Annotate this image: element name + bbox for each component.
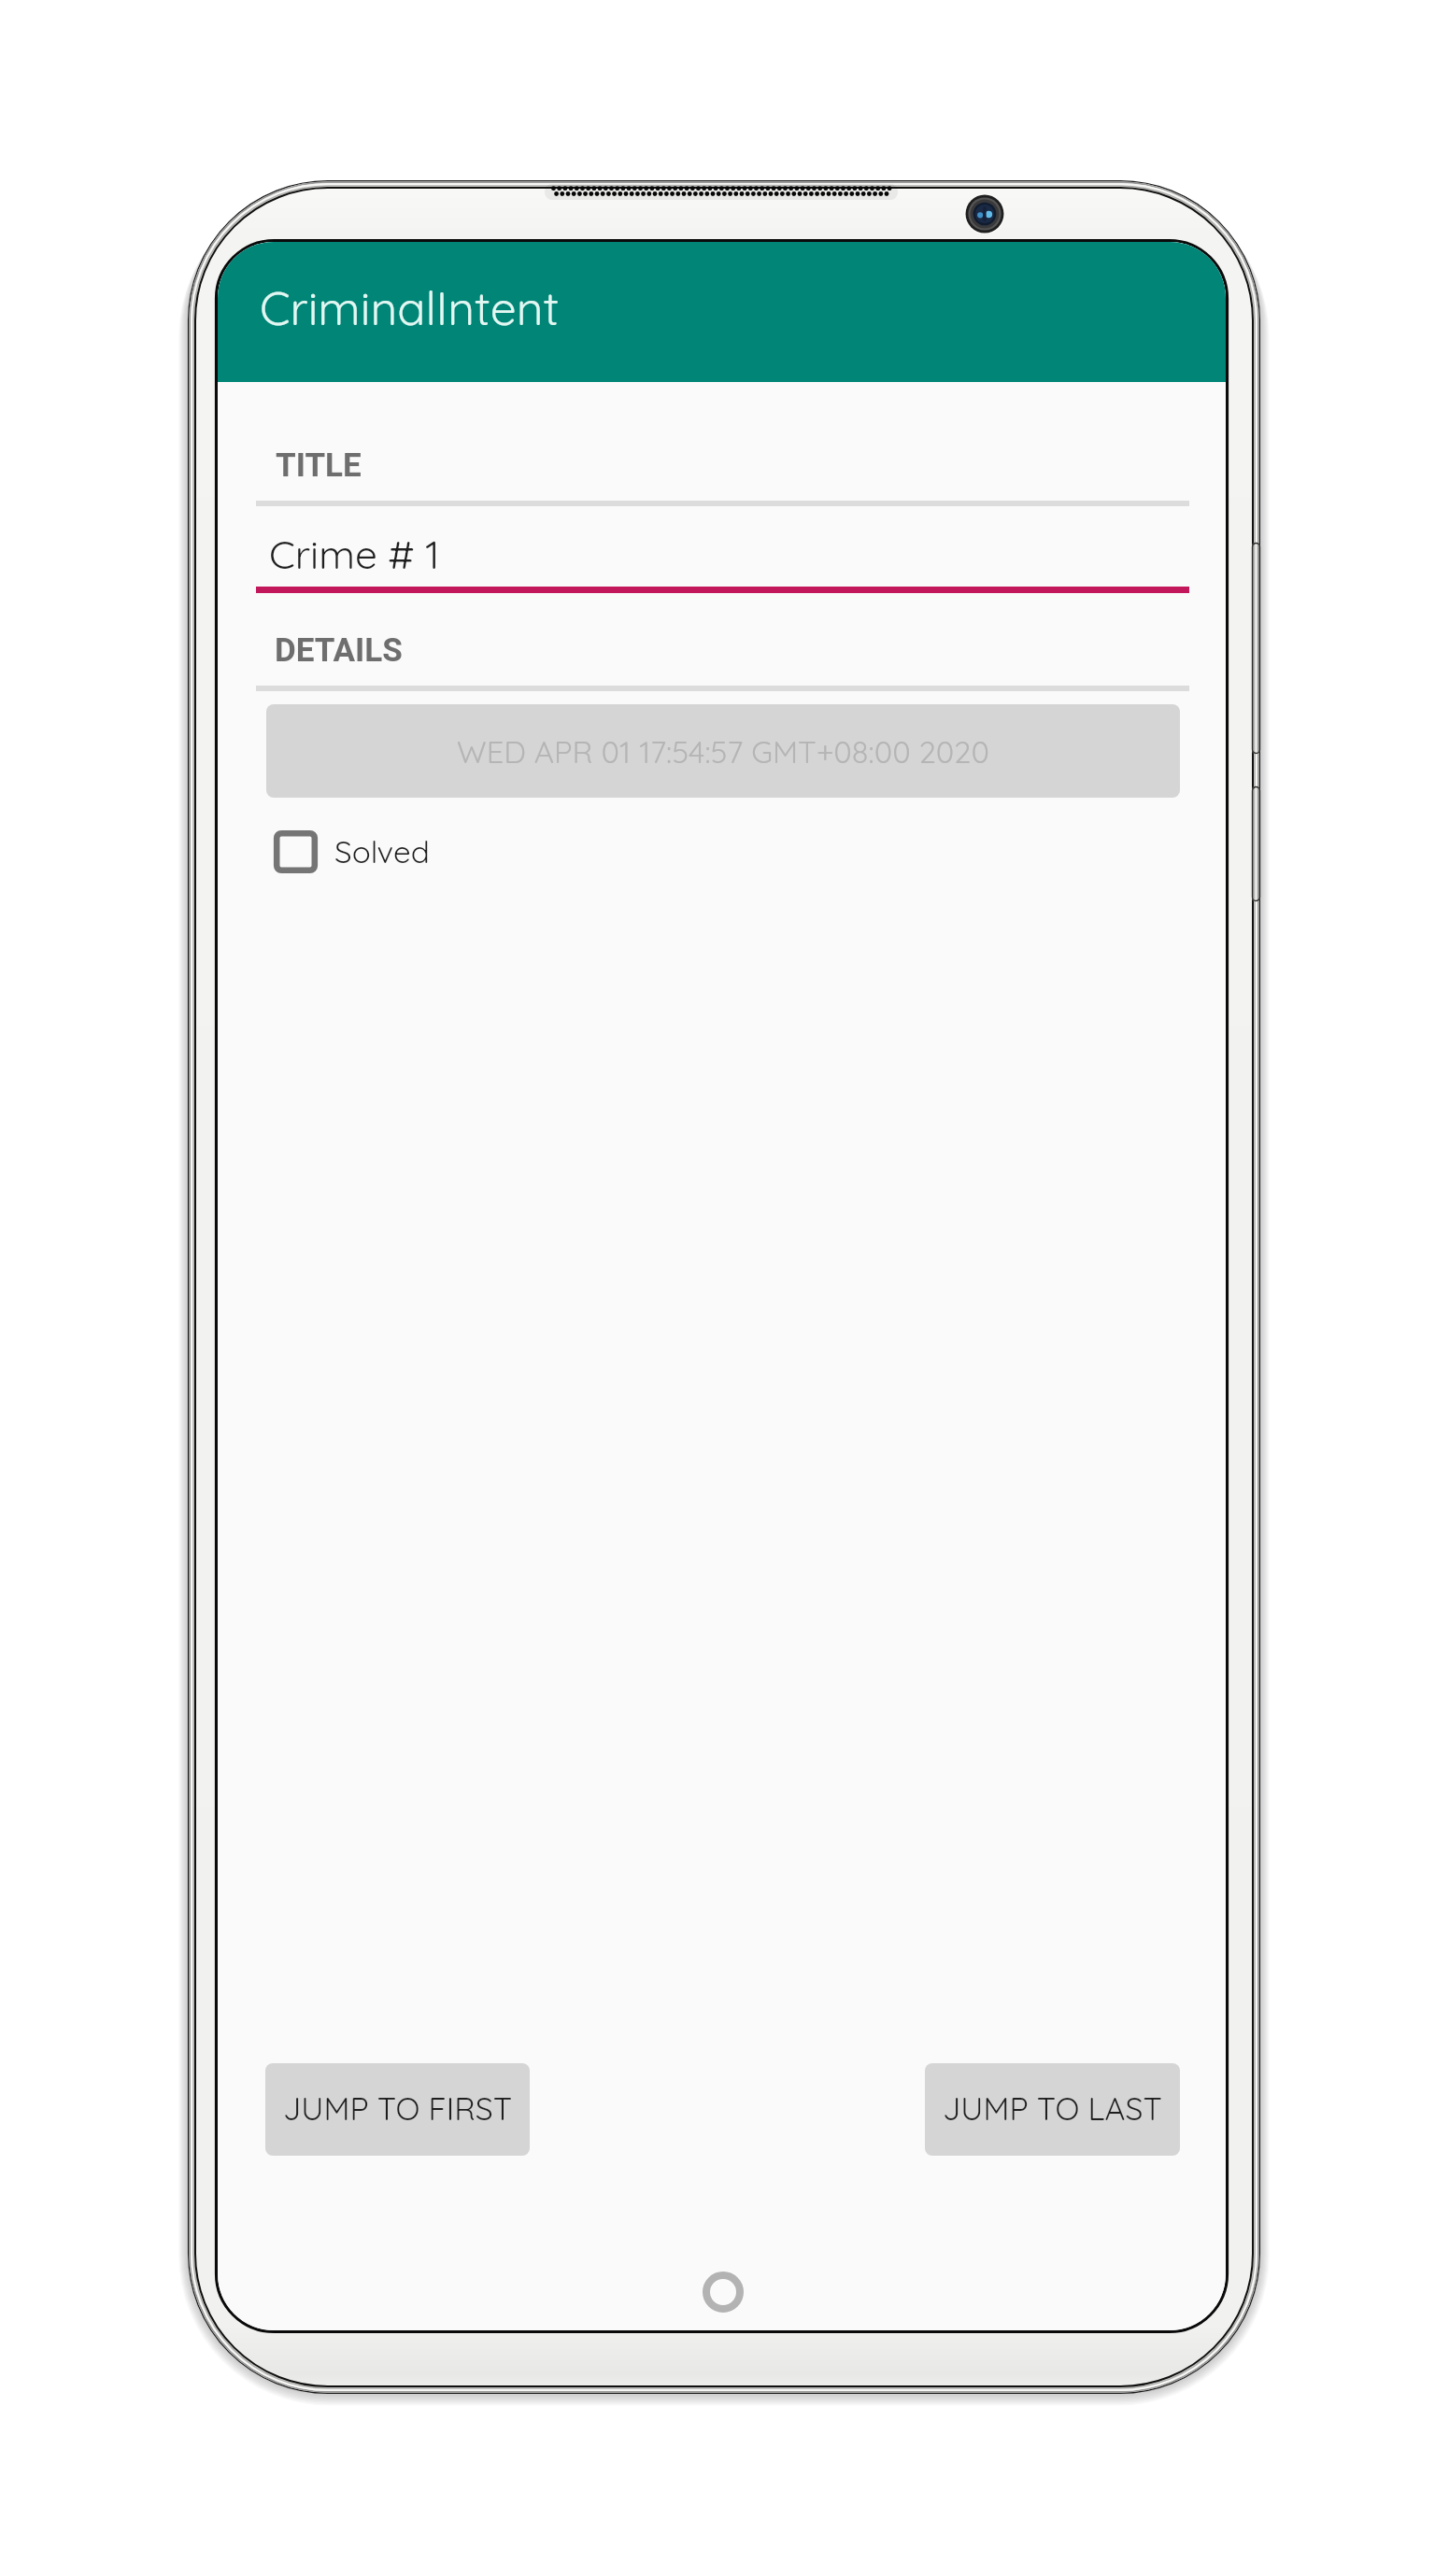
other: Device button [1252, 786, 1260, 901]
button[interactable]: WED APR 01 17:54:57 GMT+08:00 2020 [266, 704, 1180, 798]
staticText: WED APR 01 17:54:57 GMT+08:00 2020 [457, 732, 990, 771]
other: Front camera [964, 193, 1005, 234]
button[interactable]: JUMP TO LAST [925, 2063, 1180, 2156]
staticText: CriminalIntent [260, 278, 560, 336]
staticText: TITLE [276, 446, 362, 485]
button[interactable]: CriminalIntent [218, 242, 1226, 382]
staticText: Solved [334, 832, 430, 871]
staticText: Crime # 1 [269, 529, 440, 578]
other: Device button [1252, 543, 1260, 754]
other: Earpiece [550, 183, 892, 200]
button[interactable]: Solved [263, 815, 496, 888]
staticText: DETAILS [275, 631, 403, 670]
staticText: JUMP TO LAST [943, 2088, 1162, 2128]
staticText: JUMP TO FIRST [283, 2088, 513, 2128]
other: Home [702, 2271, 745, 2314]
button[interactable]: JUMP TO FIRST [265, 2063, 530, 2156]
